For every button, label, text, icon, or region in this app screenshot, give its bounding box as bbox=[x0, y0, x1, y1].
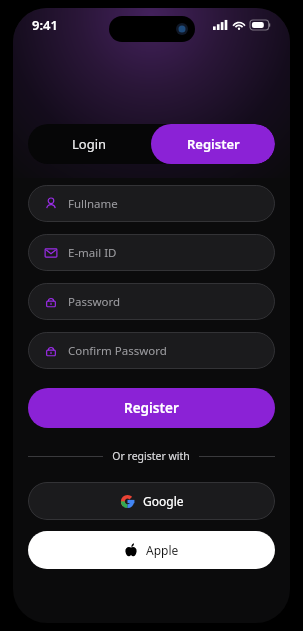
staticText: Register bbox=[187, 135, 240, 153]
button[interactable]: Register bbox=[28, 388, 275, 428]
staticText: 9:41 bbox=[32, 16, 58, 34]
button[interactable]: Fullname bbox=[28, 185, 275, 222]
staticText: Fullname bbox=[68, 196, 118, 212]
button[interactable]: Register bbox=[151, 124, 275, 164]
button[interactable]: E-mail ID bbox=[28, 234, 275, 271]
staticText: Register bbox=[124, 399, 179, 417]
button[interactable]: Google bbox=[28, 482, 275, 520]
button[interactable]: Apple bbox=[28, 531, 275, 569]
staticText: Or register with bbox=[112, 449, 190, 463]
staticText: Login bbox=[72, 135, 107, 153]
staticText: Confirm Password bbox=[68, 343, 167, 359]
staticText: E-mail ID bbox=[68, 245, 117, 261]
staticText: Google bbox=[143, 493, 184, 509]
button[interactable]: Login bbox=[28, 124, 151, 164]
staticText: Password bbox=[68, 294, 121, 310]
staticText: Apple bbox=[146, 542, 179, 558]
button[interactable]: Password bbox=[28, 283, 275, 320]
button[interactable]: Confirm Password bbox=[28, 332, 275, 369]
